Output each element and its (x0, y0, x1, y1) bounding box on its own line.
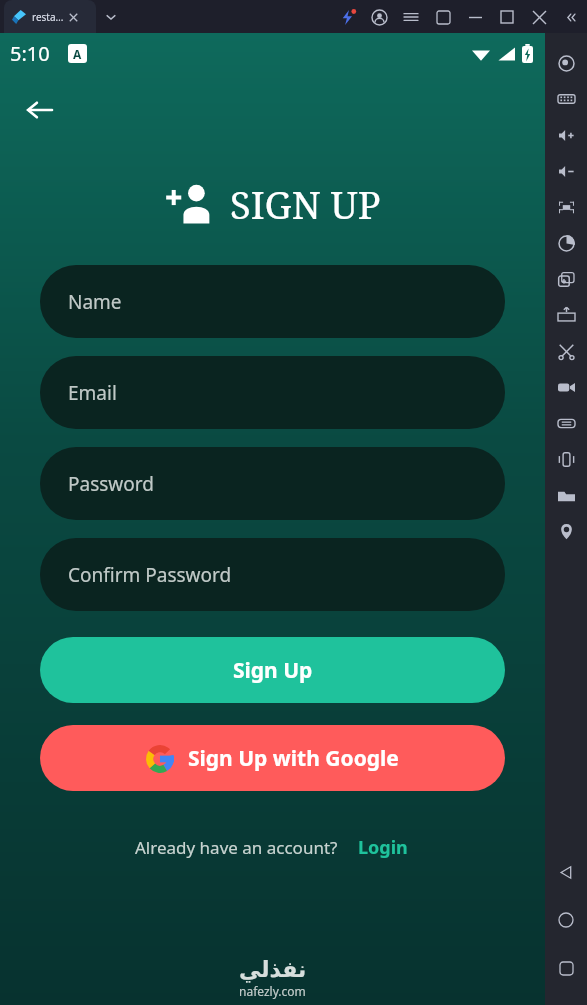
button[interactable]: Email (40, 356, 505, 429)
button[interactable]: Confirm Password (40, 538, 505, 611)
staticText: Sign Up (233, 656, 313, 685)
button[interactable] (331, 1, 363, 33)
button[interactable] (555, 2, 585, 32)
staticText: nafezly.com (239, 983, 306, 999)
staticText: A (73, 46, 82, 62)
staticText: نفذلي (239, 957, 307, 983)
button[interactable]: Home (553, 907, 579, 933)
button[interactable] (459, 1, 491, 33)
button[interactable]: Recents (553, 955, 579, 981)
staticText: Confirm Password (68, 562, 232, 588)
button[interactable]: Back (553, 859, 579, 885)
button[interactable]: Emulator control 5 (545, 225, 587, 261)
button[interactable]: Login (356, 831, 410, 864)
button[interactable] (427, 1, 459, 33)
button[interactable]: Emulator control 3 (545, 153, 587, 189)
staticText: Login (358, 835, 408, 860)
staticText: Already have an account? (135, 836, 338, 859)
staticText: resta… (32, 10, 64, 24)
button[interactable]: Emulator control 4 (545, 189, 587, 225)
button[interactable]: Emulator control 1 (545, 81, 587, 117)
button[interactable]: Sign Up (40, 637, 505, 703)
button[interactable]: Name (40, 265, 505, 338)
button[interactable]: resta… (4, 0, 96, 33)
staticText: 5:10 (10, 40, 50, 67)
button[interactable]: Emulator control 6 (545, 261, 587, 297)
button[interactable]: Emulator control 13 (545, 513, 587, 549)
button[interactable]: Emulator control 0 (545, 45, 587, 81)
button[interactable] (523, 1, 555, 33)
button[interactable]: Sign Up with Google (40, 725, 505, 791)
button[interactable]: Emulator control 9 (545, 369, 587, 405)
button[interactable] (395, 1, 427, 33)
button[interactable]: Emulator control 10 (545, 405, 587, 441)
button[interactable]: Emulator control 8 (545, 333, 587, 369)
button[interactable]: Password (40, 447, 505, 520)
button[interactable]: Emulator control 2 (545, 117, 587, 153)
button[interactable] (491, 1, 523, 33)
staticText: Password (68, 471, 154, 497)
staticText: Email (68, 380, 117, 406)
button[interactable]: Emulator control 12 (545, 477, 587, 513)
staticText: Name (68, 289, 122, 315)
button[interactable]: Emulator control 11 (545, 441, 587, 477)
button[interactable]: Back (16, 87, 62, 133)
staticText: SIGN UP (230, 178, 381, 230)
button[interactable]: Emulator control 7 (545, 297, 587, 333)
staticText: Sign Up with Google (188, 744, 399, 773)
button[interactable] (363, 1, 395, 33)
